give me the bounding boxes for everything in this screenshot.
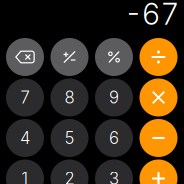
button[interactable]: 8: [50, 78, 88, 116]
button[interactable]: 4: [6, 119, 44, 157]
staticText: -67: [127, 0, 178, 32]
button[interactable]: Plus: [139, 159, 177, 184]
staticText: 1: [21, 168, 28, 184]
button[interactable]: 6: [95, 119, 133, 157]
button[interactable]: Divide: [139, 38, 177, 76]
staticText: 2: [64, 168, 74, 184]
button[interactable]: 3: [95, 159, 133, 184]
button[interactable]: Delete: [6, 38, 44, 76]
button[interactable]: 2: [50, 159, 88, 184]
button[interactable]: 1: [6, 159, 44, 184]
staticText: 9: [109, 87, 119, 108]
staticText: 3: [109, 168, 119, 184]
staticText: 5: [64, 128, 74, 148]
staticText: 4: [20, 128, 30, 148]
staticText: 8: [64, 87, 74, 108]
button[interactable]: Multiply: [139, 78, 177, 116]
button[interactable]: Minus: [139, 119, 177, 157]
button[interactable]: Percent: [95, 38, 133, 76]
staticText: 7: [20, 87, 29, 108]
button[interactable]: Plus minus: [50, 38, 88, 76]
button[interactable]: 5: [50, 119, 88, 157]
button[interactable]: 9: [95, 78, 133, 116]
button[interactable]: 7: [6, 78, 44, 116]
staticText: 6: [109, 128, 119, 148]
